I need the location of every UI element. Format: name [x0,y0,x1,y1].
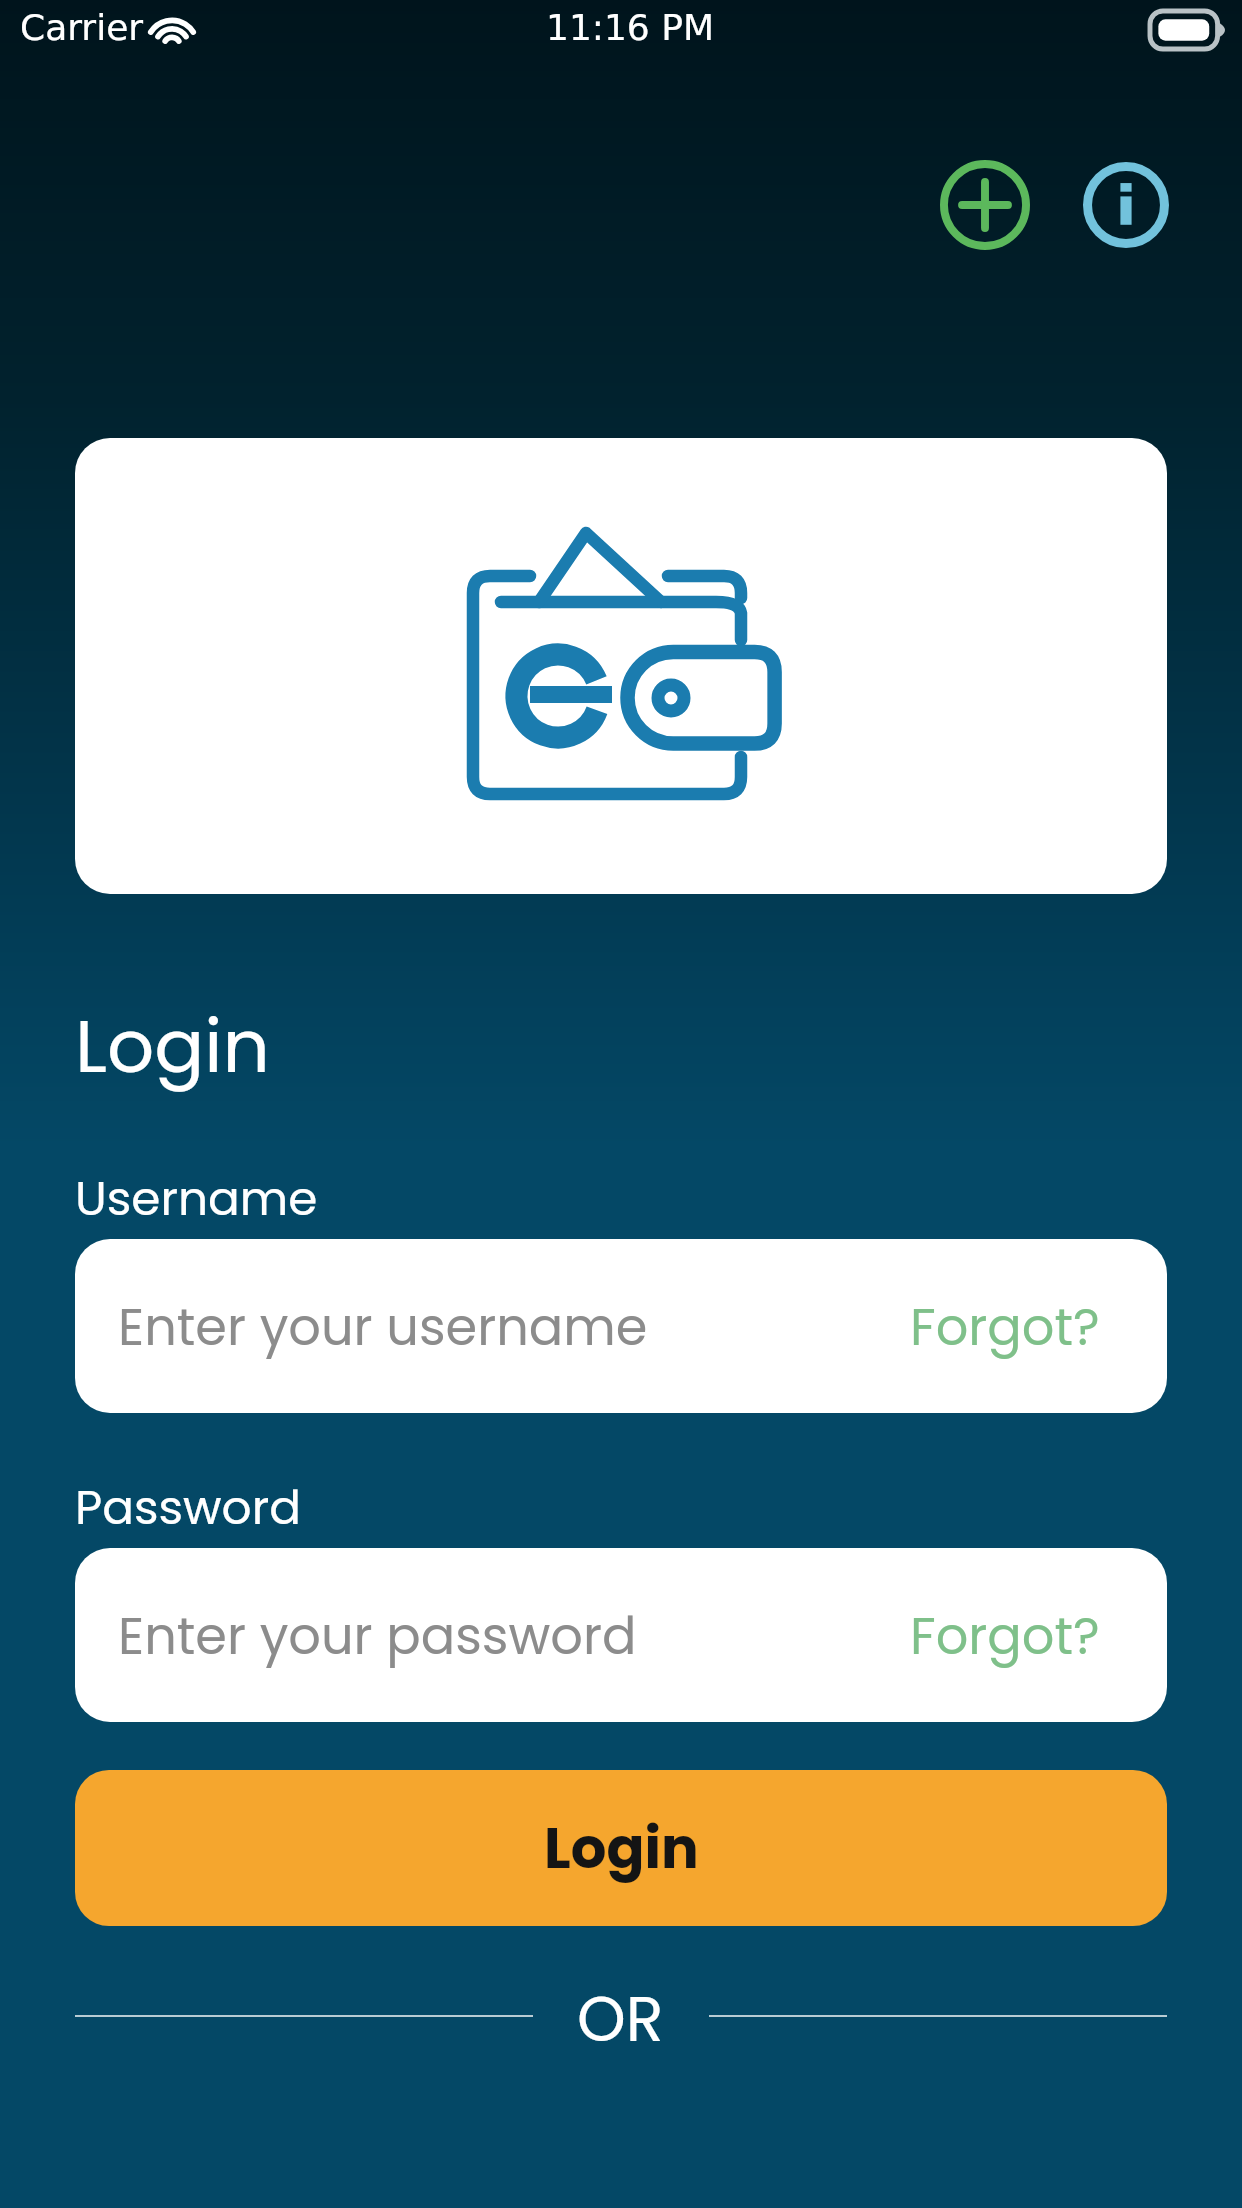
staticText: Username [75,1166,318,1232]
staticText: Enter your username [118,1291,648,1362]
staticText: Login [544,1809,699,1887]
staticText: OR [577,1976,664,2056]
staticText: 11:16 PM [546,7,714,49]
button[interactable]: Add [937,157,1033,253]
staticText: Enter your password [118,1600,637,1671]
button[interactable]: Enter your password [75,1548,1167,1722]
staticText: Carrier [20,7,144,49]
button[interactable]: Information [1078,157,1174,253]
staticText: Login [75,994,270,1098]
button[interactable]: Login [75,1770,1167,1926]
button[interactable]: Enter your username [75,1239,1167,1413]
button[interactable]: Forgot? [910,1291,1100,1362]
button[interactable]: Forgot? [910,1600,1100,1671]
staticText: Password [75,1475,301,1541]
